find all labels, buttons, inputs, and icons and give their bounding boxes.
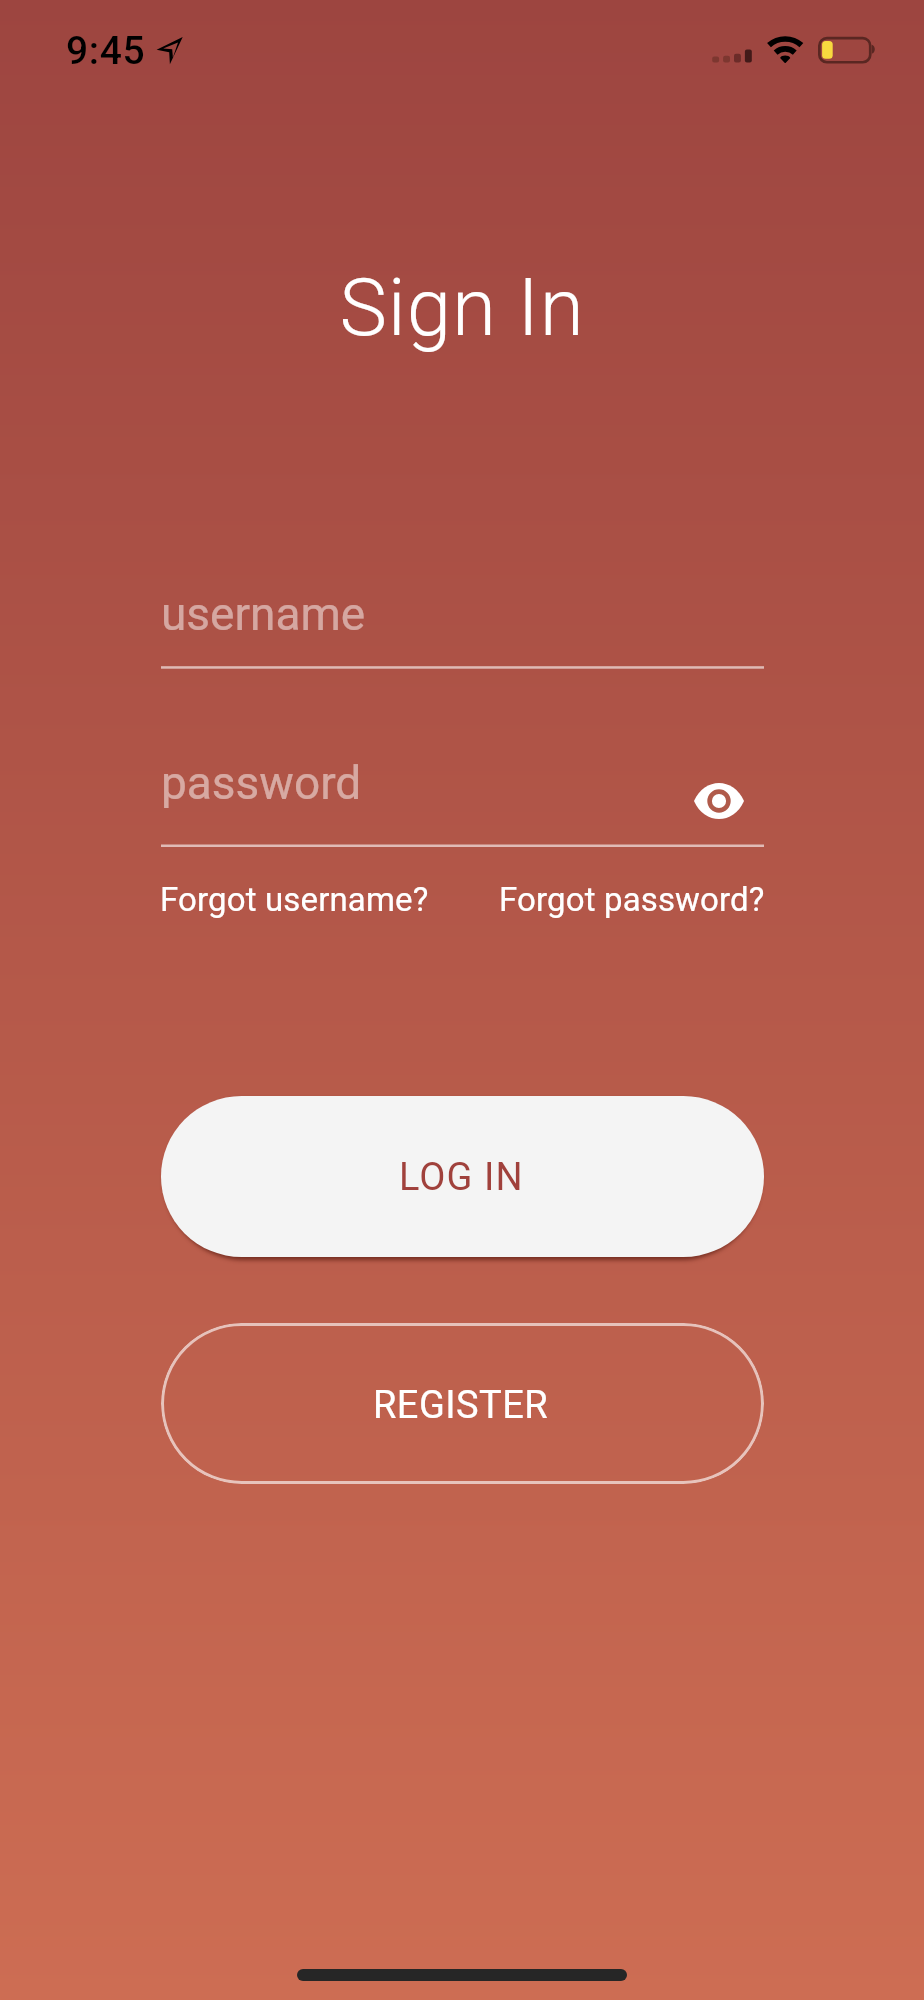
- button[interactable]: Forgot username?: [160, 880, 429, 919]
- staticText: 9:45: [66, 28, 146, 74]
- staticText: Sign In: [0, 261, 924, 355]
- staticText: REGISTER: [373, 1383, 549, 1428]
- staticText: password: [161, 756, 362, 810]
- staticText: LOG IN: [399, 1155, 524, 1200]
- button[interactable]: LOG IN: [161, 1096, 764, 1257]
- button[interactable]: REGISTER: [161, 1323, 764, 1484]
- button[interactable]: Show password: [683, 765, 755, 837]
- button[interactable]: Forgot password?: [499, 880, 765, 919]
- staticText: username: [161, 587, 366, 641]
